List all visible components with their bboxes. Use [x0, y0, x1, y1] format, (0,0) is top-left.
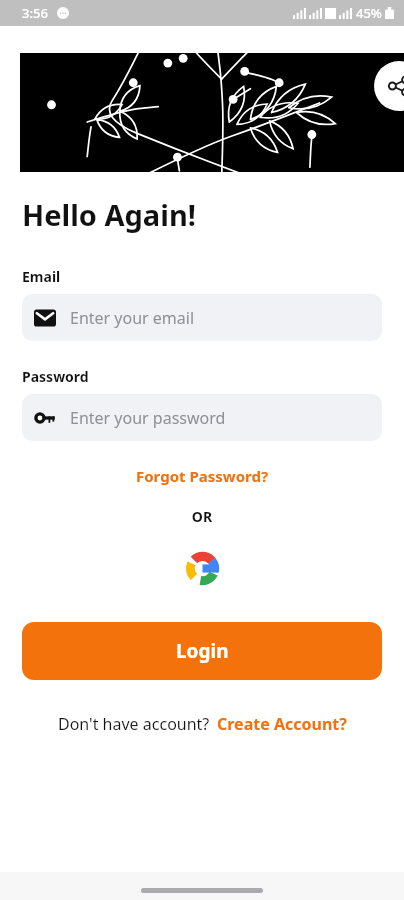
button[interactable]: Enter your email — [22, 294, 382, 341]
staticText: Email — [22, 267, 61, 286]
staticText: 45% — [356, 4, 382, 22]
button[interactable]: Forgot Password? — [130, 464, 275, 488]
staticText: Don't have account? — [58, 713, 210, 735]
staticText: OR — [0, 507, 404, 526]
button[interactable]: Enter your password — [22, 394, 382, 441]
button[interactable]: Sign in with Google — [180, 546, 224, 590]
button[interactable]: Login — [22, 622, 382, 680]
staticText: Enter your email — [70, 307, 195, 329]
staticText: Password — [22, 367, 89, 386]
button[interactable]: Share — [374, 61, 404, 111]
staticText: Enter your password — [70, 407, 226, 429]
staticText: 3:56 — [22, 4, 48, 22]
button[interactable]: Create Account? — [217, 711, 347, 737]
staticText: Login — [176, 638, 229, 664]
staticText: Hello Again! — [22, 195, 196, 234]
